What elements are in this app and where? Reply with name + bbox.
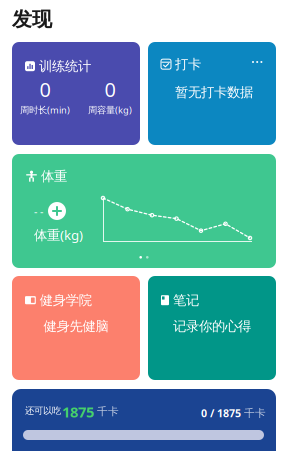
staticText: 周时长(min)	[20, 104, 70, 116]
staticText: 体重(kg)	[34, 226, 83, 244]
staticText: 1875	[62, 402, 94, 421]
button[interactable]: 体重	[12, 154, 276, 268]
button[interactable]: 笔记	[148, 276, 276, 380]
staticText: 0 / 1875	[201, 406, 241, 420]
staticText: - -	[34, 204, 43, 218]
staticText: 0	[104, 76, 115, 103]
staticText: 还可以吃	[25, 405, 61, 416]
staticText: 千卡	[97, 405, 119, 418]
staticText: 笔记	[173, 292, 199, 308]
staticText: 0	[39, 76, 50, 103]
button[interactable]: 打卡	[148, 42, 276, 145]
staticText: 发现	[12, 7, 52, 32]
button[interactable]: 健身学院	[12, 276, 140, 380]
staticText: 训练统计	[39, 58, 91, 74]
staticText: 暂无打卡数据	[175, 84, 253, 100]
staticText: 健身先健脑	[43, 318, 108, 334]
staticText: 记录你的心得	[173, 318, 251, 334]
staticText: 千卡	[244, 406, 266, 420]
button[interactable]: 训练统计	[12, 42, 140, 145]
staticText: 健身学院	[40, 292, 92, 308]
staticText: 体重	[41, 168, 67, 184]
staticText: 打卡	[175, 56, 201, 72]
staticText: 周容量(kg)	[88, 104, 132, 116]
